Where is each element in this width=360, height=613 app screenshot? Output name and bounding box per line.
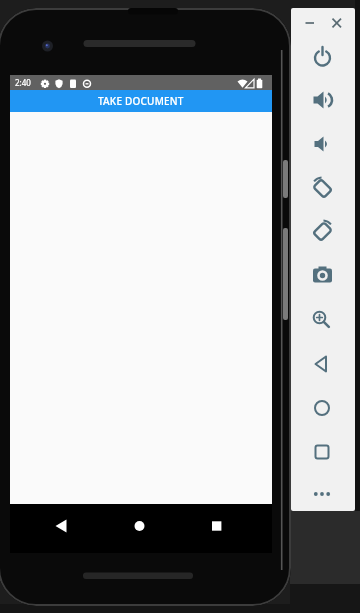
button[interactable] [304, 346, 341, 382]
button[interactable] [304, 82, 341, 118]
staticText: 2:40 [15, 77, 31, 88]
button[interactable] [120, 508, 162, 550]
button[interactable] [304, 39, 341, 75]
button[interactable] [304, 257, 341, 293]
button[interactable] [304, 390, 341, 426]
button[interactable] [304, 171, 341, 207]
button[interactable] [302, 15, 318, 31]
button[interactable] [304, 476, 341, 512]
button[interactable] [329, 15, 345, 31]
staticText: TAKE DOCUMENT [98, 94, 184, 108]
button[interactable] [304, 302, 341, 338]
button[interactable] [304, 434, 341, 470]
button[interactable] [192, 508, 234, 550]
button[interactable]: TAKE DOCUMENT [10, 90, 272, 112]
button[interactable] [304, 126, 341, 162]
button[interactable] [304, 214, 341, 250]
button[interactable] [40, 508, 82, 550]
